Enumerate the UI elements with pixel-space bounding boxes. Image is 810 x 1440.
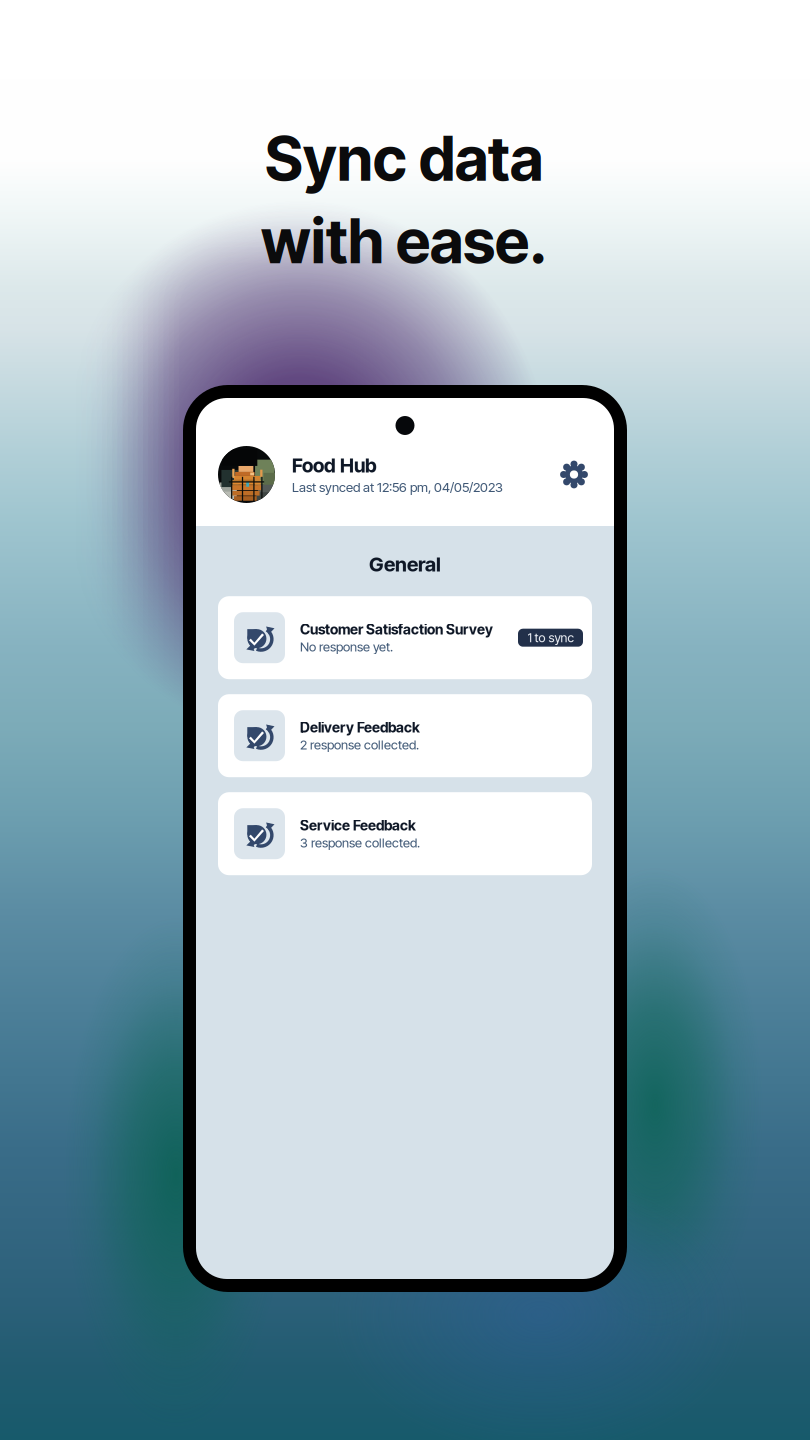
staticText: General (369, 552, 441, 576)
button[interactable]: Service Feedback (218, 792, 592, 875)
button[interactable]: Customer Satisfaction Survey (218, 596, 592, 679)
staticText: Service Feedback (300, 817, 416, 834)
staticText: 1 to sync (527, 630, 573, 645)
staticText: with ease. (261, 204, 547, 278)
staticText: Customer Satisfaction Survey (300, 621, 493, 638)
button[interactable]: Delivery Feedback (218, 694, 592, 777)
staticText: 3 response collected. (300, 835, 420, 850)
staticText: Sync data (265, 122, 543, 195)
staticText: Delivery Feedback (300, 719, 420, 736)
staticText: Last synced at 12:56 pm, 04/05/2023 (292, 479, 503, 495)
staticText: Food Hub (292, 454, 377, 477)
staticText: No response yet. (300, 639, 393, 654)
button[interactable]: Settings (556, 456, 592, 492)
staticText: 2 response collected. (300, 737, 419, 752)
